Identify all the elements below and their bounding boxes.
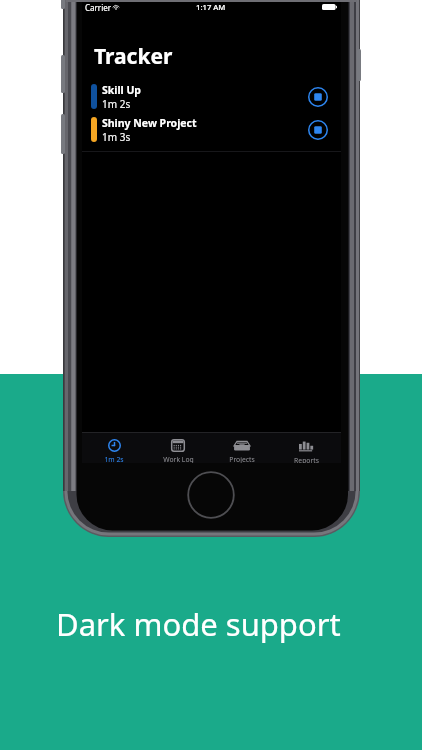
button[interactable]: Reports bbox=[274, 433, 338, 463]
staticText: Dark mode support bbox=[56, 603, 341, 645]
staticText: Reports bbox=[294, 456, 319, 463]
button[interactable]: Work Log bbox=[146, 433, 210, 463]
button[interactable]: Projects bbox=[210, 433, 274, 463]
button[interactable]: Shiny New Project bbox=[82, 113, 341, 146]
button[interactable]: Home bbox=[187, 471, 235, 519]
staticText: Shiny New Project bbox=[102, 116, 197, 130]
button[interactable]: Skill Up bbox=[82, 80, 341, 113]
staticText: Work Log bbox=[163, 455, 194, 463]
staticText: 1m 2s bbox=[104, 455, 124, 463]
staticText: 1:17 AM bbox=[196, 2, 226, 12]
button[interactable]: 1m 2s bbox=[82, 433, 146, 463]
staticText: 1m 2s bbox=[102, 97, 131, 111]
button[interactable]: Stop timer bbox=[308, 120, 328, 140]
staticText: Carrier bbox=[85, 2, 112, 13]
staticText: Skill Up bbox=[102, 83, 141, 97]
staticText: Projects bbox=[229, 455, 255, 463]
staticText: Tracker bbox=[94, 42, 173, 71]
button[interactable]: Stop timer bbox=[308, 87, 328, 107]
staticText: 1m 3s bbox=[102, 130, 131, 144]
